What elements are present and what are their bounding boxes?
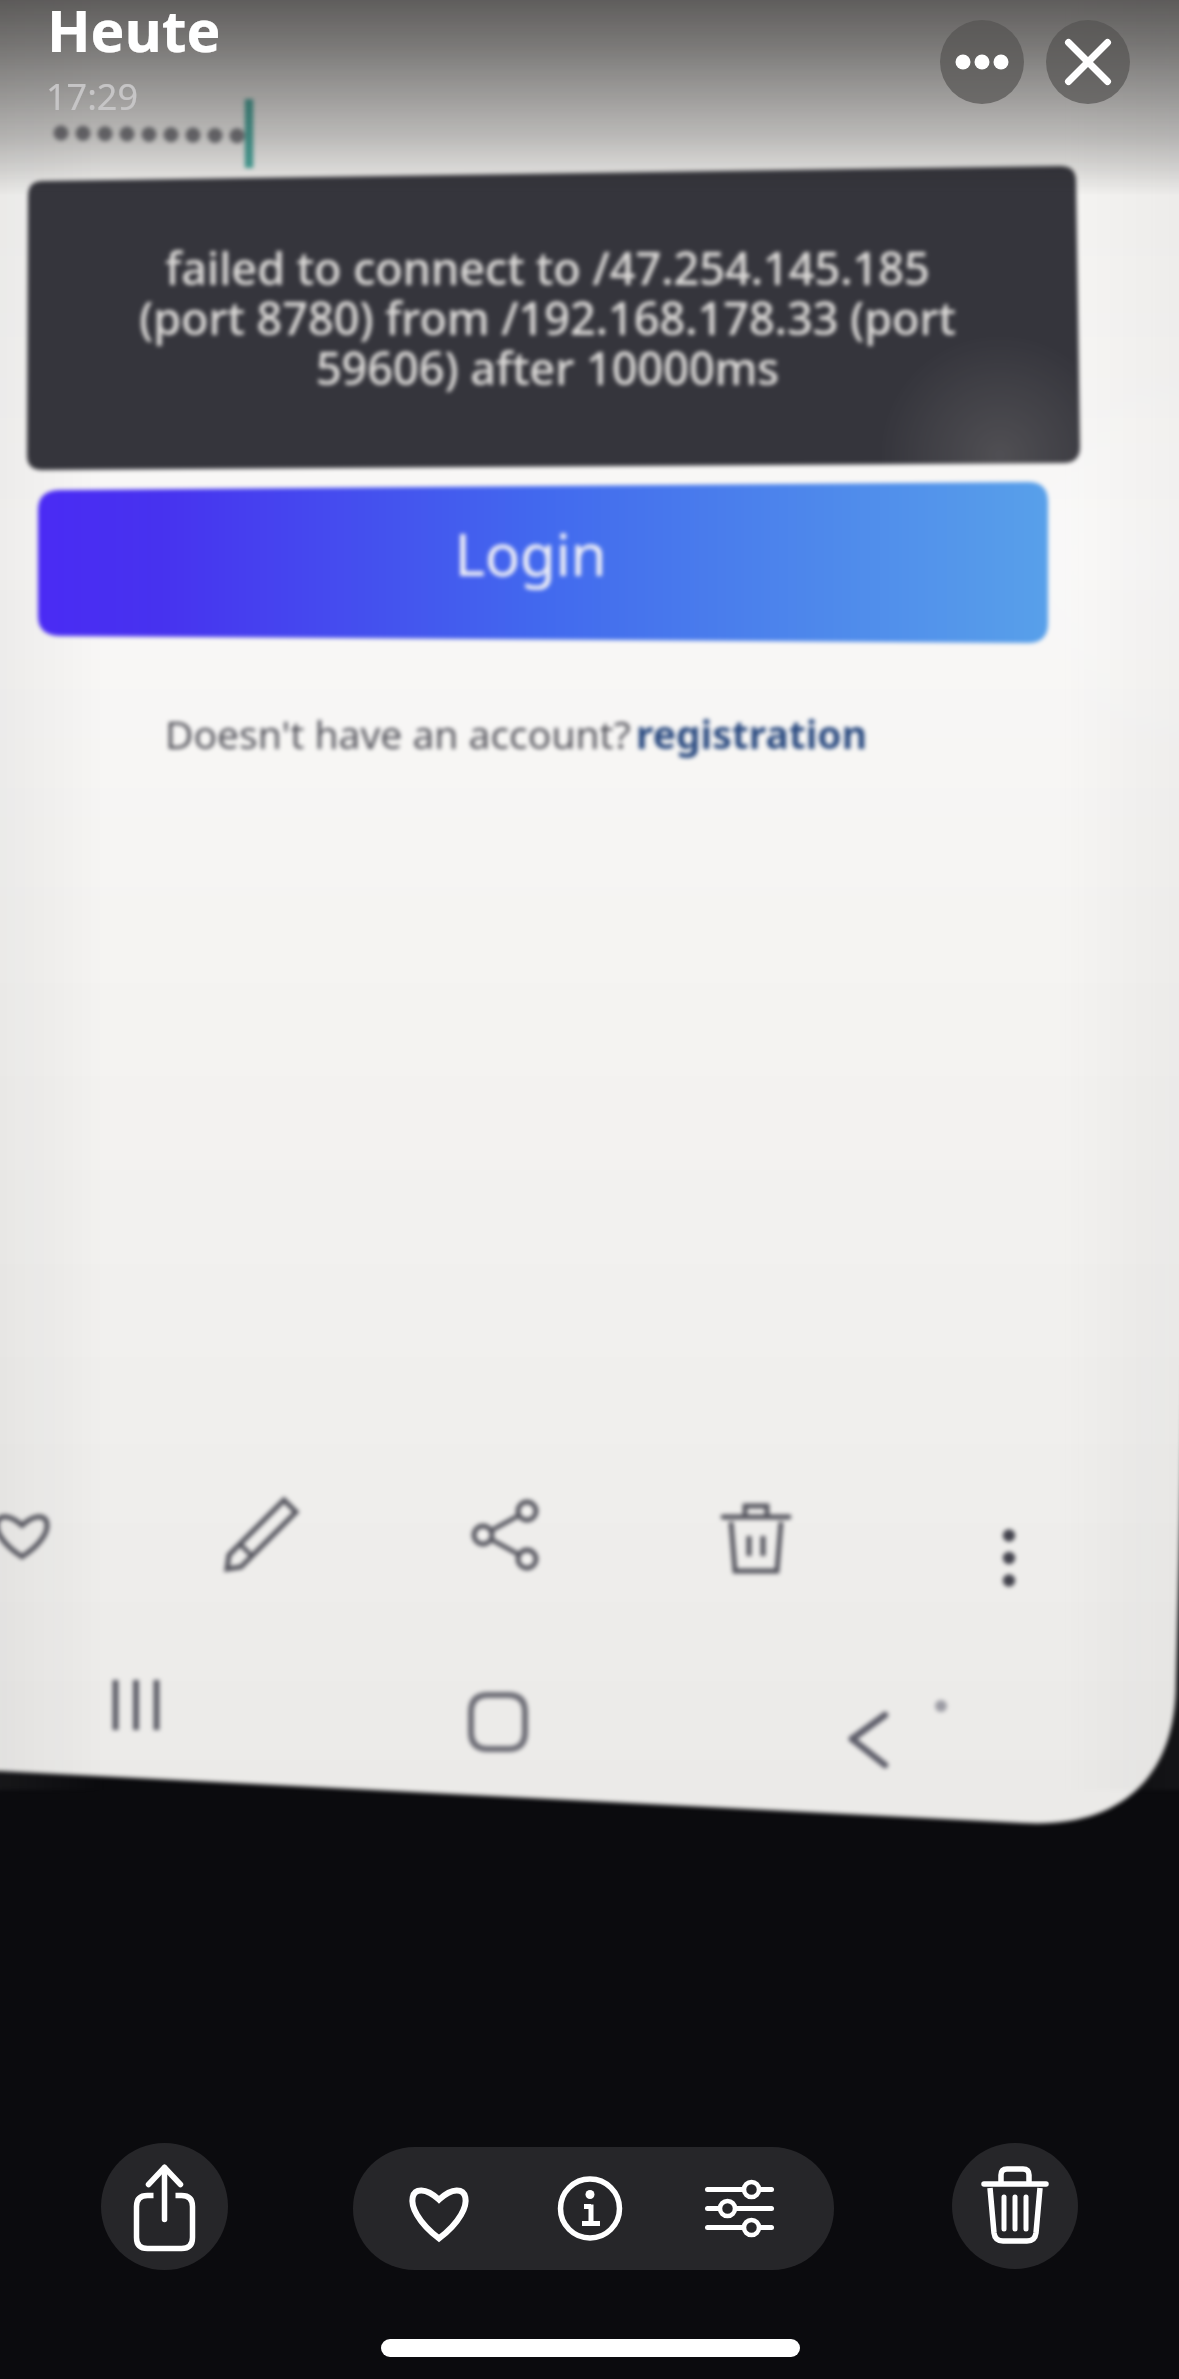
button[interactable]: registration	[628, 712, 868, 764]
staticText: Heute	[47, 0, 221, 69]
staticText: 17:29	[46, 72, 139, 121]
button[interactable]: Info	[525, 2147, 675, 2270]
staticText: Doesn't have an account?	[165, 707, 631, 760]
staticText: registration	[636, 707, 868, 760]
staticText: failed to connect to /47.254.145.185 (po…	[50, 237, 1045, 398]
button[interactable]: Edit	[202, 1478, 322, 1594]
button[interactable]: More options	[940, 20, 1024, 104]
button[interactable]: Adjust	[675, 2147, 834, 2270]
button[interactable]: Delete	[952, 2143, 1078, 2269]
button[interactable]: More	[949, 1478, 1069, 1594]
button[interactable]: Home	[443, 1662, 553, 1772]
staticText: Login	[23, 514, 1038, 593]
button[interactable]: Close	[1046, 20, 1130, 104]
button[interactable]: Favorite	[353, 2147, 525, 2270]
button[interactable]: Share	[447, 1478, 567, 1594]
button[interactable]: Share	[101, 2143, 228, 2270]
button[interactable]: Recents	[81, 1662, 191, 1772]
button[interactable]: Login	[38, 482, 1048, 643]
button[interactable]: Favorite	[0, 1478, 82, 1594]
button[interactable]: Delete	[696, 1478, 816, 1594]
button[interactable]: Back	[814, 1662, 924, 1772]
